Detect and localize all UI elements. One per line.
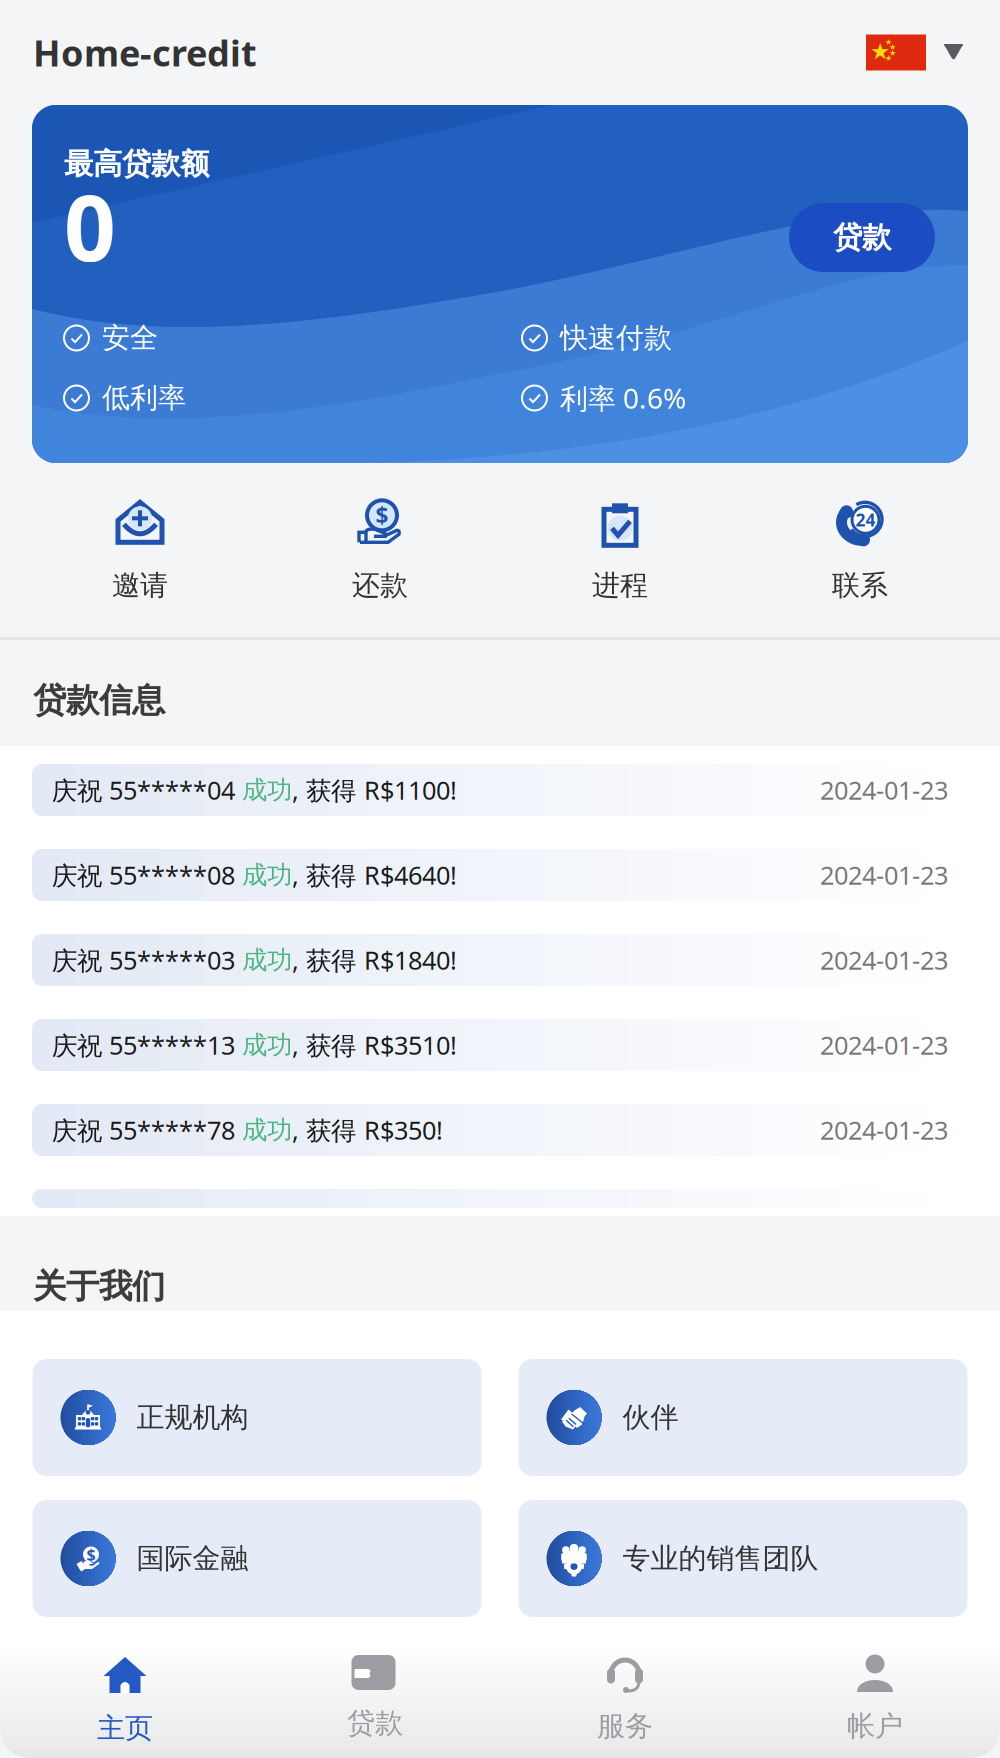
- staticText: 成功: [242, 859, 292, 890]
- button[interactable]: 主页: [0, 1641, 250, 1758]
- staticText: 0: [64, 166, 116, 286]
- button[interactable]: 贷款: [250, 1641, 500, 1758]
- staticText: 最高贷款额: [64, 146, 209, 182]
- button[interactable]: 帐户: [750, 1641, 1000, 1758]
- staticText: Home-credit: [33, 29, 257, 76]
- staticText: 专业的销售团队: [622, 1541, 818, 1576]
- staticText: , 获得 R$350!: [292, 1113, 443, 1147]
- staticText: 2024-01-23: [820, 943, 948, 977]
- staticText: , 获得 R$4640!: [292, 858, 457, 892]
- staticText: 2024-01-23: [820, 1028, 948, 1062]
- staticText: 24: [855, 508, 875, 531]
- staticText: 2024-01-23: [820, 773, 948, 807]
- staticText: 庆祝 55*****08: [52, 858, 242, 892]
- staticText: 联系: [832, 568, 888, 603]
- staticText: 关于我们: [33, 1266, 165, 1307]
- button[interactable]: 24: [740, 485, 980, 609]
- staticText: 庆祝 55*****04: [52, 773, 242, 807]
- staticText: 利率 0.6%: [560, 379, 686, 417]
- button[interactable]: 贷款: [789, 203, 935, 272]
- staticText: 帐户: [847, 1709, 903, 1743]
- staticText: 快速付款: [560, 321, 672, 355]
- staticText: $: [375, 500, 388, 530]
- staticText: 主页: [97, 1711, 153, 1745]
- staticText: 2024-01-23: [820, 858, 948, 892]
- staticText: 贷款信息: [33, 680, 165, 721]
- staticText: 成功: [242, 944, 292, 975]
- staticText: ★: [889, 42, 896, 52]
- staticText: , 获得 R$3510!: [292, 1028, 457, 1062]
- staticText: 成功: [242, 1029, 292, 1060]
- staticText: , 获得 R$1840!: [292, 943, 457, 977]
- staticText: 还款: [352, 568, 408, 603]
- staticText: 安全: [102, 321, 158, 355]
- button[interactable]: 邀请: [20, 485, 260, 609]
- staticText: 进程: [592, 568, 648, 603]
- staticText: 成功: [242, 774, 292, 805]
- staticText: 低利率: [102, 381, 186, 415]
- button[interactable]: $: [32, 1500, 481, 1617]
- button[interactable]: 服务: [500, 1641, 750, 1758]
- staticText: 2024-01-23: [820, 1113, 948, 1147]
- button[interactable]: 进程: [500, 485, 740, 609]
- staticText: 成功: [242, 1114, 292, 1145]
- button[interactable]: Select language: [866, 34, 964, 70]
- button[interactable]: 伙伴: [518, 1359, 967, 1476]
- staticText: 贷款: [833, 219, 891, 255]
- staticText: ★: [885, 37, 892, 47]
- staticText: 庆祝 55*****03: [52, 943, 242, 977]
- staticText: 服务: [597, 1709, 653, 1743]
- button[interactable]: 专业的销售团队: [518, 1500, 967, 1617]
- staticText: , 获得 R$1100!: [292, 773, 457, 807]
- button[interactable]: 正规机构: [32, 1359, 481, 1476]
- staticText: 正规机构: [136, 1400, 248, 1435]
- staticText: 贷款: [347, 1706, 403, 1740]
- staticText: 庆祝 55*****13: [52, 1028, 242, 1062]
- staticText: 邀请: [112, 568, 168, 603]
- button[interactable]: $: [260, 485, 500, 609]
- staticText: 伙伴: [622, 1400, 678, 1435]
- staticText: 庆祝 55*****78: [52, 1113, 242, 1147]
- staticText: ★: [889, 48, 896, 58]
- staticText: ★: [885, 53, 892, 63]
- staticText: 国际金融: [136, 1541, 248, 1576]
- staticText: $: [86, 1544, 95, 1565]
- staticText: ★: [870, 38, 890, 64]
